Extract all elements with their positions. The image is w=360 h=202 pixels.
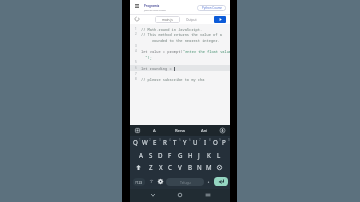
staticText: // Math.round in JavaScript. — [141, 27, 203, 32]
staticText: 3 — [135, 44, 137, 48]
staticText: 6 — [135, 66, 137, 70]
staticText: "); — [141, 55, 152, 60]
button[interactable]: Clipboard — [133, 126, 142, 135]
button[interactable]: B — [185, 161, 195, 173]
button[interactable]: F — [165, 149, 175, 161]
button[interactable]: Output — [184, 16, 198, 23]
staticText: 6 — [189, 138, 191, 142]
button[interactable]: R — [160, 136, 170, 148]
button[interactable]: I — [200, 136, 210, 148]
button[interactable]: Emoji — [156, 176, 164, 187]
staticText: A — [153, 128, 156, 134]
button[interactable]: Menu — [132, 1, 141, 10]
button[interactable]: L — [214, 149, 224, 161]
staticText: 0 — [228, 138, 230, 142]
button[interactable]: Back — [146, 189, 160, 201]
button[interactable]: C — [165, 161, 175, 173]
staticText: G — [178, 151, 183, 159]
button[interactable]: main.js — [155, 16, 180, 23]
staticText: R — [163, 138, 167, 146]
button[interactable]: Y — [180, 136, 190, 148]
staticText: JavaScript Online Compiler — [144, 9, 167, 11]
button[interactable]: H — [185, 149, 195, 161]
staticText: S — [149, 151, 153, 159]
button[interactable]: G — [175, 149, 185, 161]
button[interactable]: A — [136, 149, 146, 161]
button[interactable]: J — [194, 149, 204, 161]
button[interactable]: U — [190, 136, 200, 148]
button[interactable]: Backspace — [214, 161, 225, 173]
staticText: 4 — [135, 49, 137, 53]
staticText: 4 — [169, 138, 171, 142]
button[interactable]: Q — [130, 136, 140, 148]
staticText: E — [153, 138, 157, 146]
button[interactable]: Rena — [170, 126, 190, 135]
button[interactable]: Voice input — [218, 126, 227, 135]
button[interactable]: M — [204, 161, 214, 173]
staticText: M — [206, 163, 212, 171]
staticText: // This method returns the value of a — [141, 32, 222, 37]
button[interactable]: T — [170, 136, 180, 148]
button[interactable]: Shift — [133, 161, 144, 173]
staticText: 8 — [209, 138, 211, 142]
button[interactable]: Reset — [133, 15, 141, 23]
staticText: Y — [183, 138, 187, 146]
staticText: Rena — [175, 128, 185, 134]
staticText: let value = prompt( — [141, 49, 183, 54]
button[interactable]: O — [210, 136, 220, 148]
staticText: Ani — [201, 128, 208, 134]
staticText: 7 — [135, 72, 137, 76]
button[interactable]: Run — [214, 16, 226, 23]
staticText: Programiz — [144, 4, 160, 8]
button[interactable]: Python Course — [197, 5, 226, 11]
staticText: Python Course — [202, 6, 222, 10]
staticText: 3 — [159, 138, 161, 142]
staticText: J — [198, 151, 200, 159]
button[interactable]: N — [194, 161, 204, 173]
button[interactable]: K — [204, 149, 214, 161]
staticText: Q — [133, 138, 138, 146]
button[interactable]: S — [146, 149, 156, 161]
staticText: 5 — [179, 138, 181, 142]
button[interactable]: P — [219, 136, 229, 148]
staticText: X — [159, 163, 163, 171]
button[interactable]: Recent apps — [201, 189, 215, 201]
staticText: 2 — [149, 138, 151, 142]
button[interactable]: Z — [146, 161, 156, 173]
staticText: W — [142, 138, 148, 146]
staticText: I — [204, 138, 207, 146]
button[interactable]: X — [156, 161, 166, 173]
staticText: C — [168, 163, 172, 171]
button[interactable]: Home — [173, 189, 187, 201]
staticText: O — [213, 138, 218, 146]
staticText: F — [168, 151, 172, 159]
button[interactable]: A — [146, 126, 162, 135]
button[interactable]: Telugu — [166, 178, 204, 186]
staticText: T — [173, 138, 177, 146]
staticText: let rounding = — [141, 66, 174, 71]
staticText: K — [207, 151, 211, 159]
staticText: U — [193, 138, 198, 146]
staticText: A — [139, 151, 143, 159]
staticText: "enter the float value — [183, 49, 230, 54]
staticText: P — [222, 138, 226, 146]
staticText: 1 — [139, 138, 141, 142]
staticText: 2 — [135, 32, 137, 36]
staticText: Output — [186, 18, 197, 22]
button[interactable]: W — [140, 136, 150, 148]
staticText: rounded to the nearest integer. — [141, 38, 220, 43]
staticText: B — [188, 163, 193, 171]
button[interactable]: Ani — [196, 126, 212, 135]
button[interactable]: D — [155, 149, 165, 161]
button[interactable]: Comma — [147, 176, 155, 187]
staticText: 9 — [219, 138, 221, 142]
button[interactable]: Enter — [214, 177, 228, 186]
button[interactable]: Period — [205, 176, 211, 187]
staticText: V — [178, 163, 182, 171]
staticText: N — [197, 163, 202, 171]
button[interactable]: E — [150, 136, 160, 148]
staticText: 5 — [135, 60, 137, 64]
button[interactable]: ?123 — [133, 178, 145, 186]
staticText: H — [188, 151, 193, 159]
button[interactable]: V — [175, 161, 185, 173]
